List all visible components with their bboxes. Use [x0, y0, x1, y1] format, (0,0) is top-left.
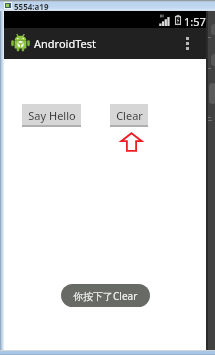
staticText: 1:57	[184, 14, 206, 29]
button[interactable]: Say Hello	[22, 104, 81, 127]
staticText: AndroidTest	[34, 36, 96, 51]
button[interactable]: More options	[173, 28, 201, 59]
button[interactable]: Clear	[110, 104, 148, 127]
staticText: Clear	[116, 108, 143, 123]
staticText: 5554:a19	[14, 1, 49, 12]
staticText: 你按下了Clear	[73, 289, 138, 303]
button[interactable]: 你按下了Clear	[61, 284, 150, 307]
staticText: Say Hello	[28, 108, 76, 123]
